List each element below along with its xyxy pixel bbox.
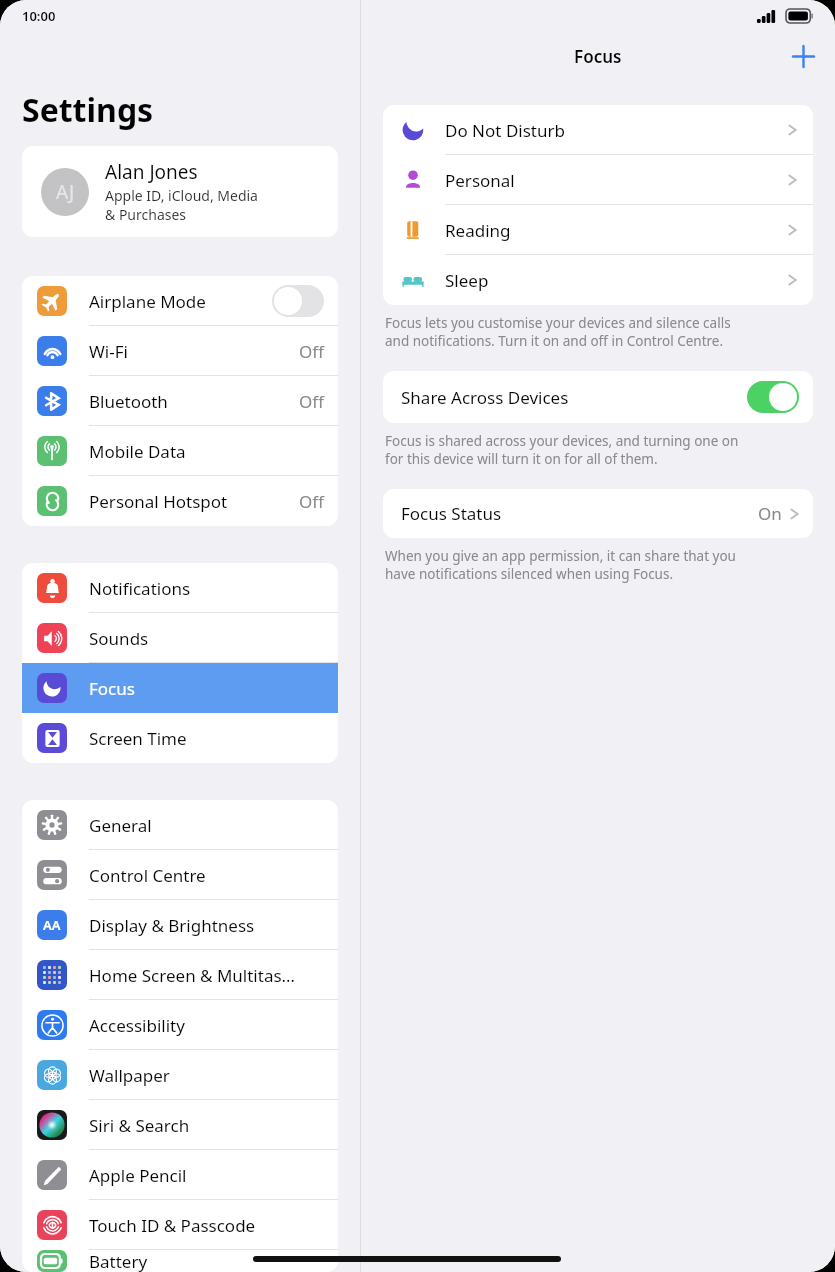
staticText: Reading: [445, 219, 511, 242]
button[interactable]: Mobile Data: [22, 426, 338, 476]
staticText: Notifications: [89, 577, 191, 600]
button[interactable]: Personal: [383, 155, 813, 205]
button[interactable]: Focus Status: [383, 489, 813, 538]
staticText: Display & Brightness: [89, 914, 255, 937]
staticText: Off: [299, 490, 324, 513]
staticText: Focus: [574, 45, 622, 68]
staticText: Touch ID & Passcode: [89, 1214, 256, 1237]
staticText: Off: [299, 390, 324, 413]
staticText: Apple Pencil: [89, 1164, 187, 1187]
staticText: Off: [299, 340, 324, 363]
staticText: Focus lets you customise your devices an…: [385, 314, 731, 350]
staticText: Focus: [89, 677, 135, 700]
button[interactable]: Reading: [383, 205, 813, 255]
staticText: Do Not Disturb: [445, 119, 565, 142]
staticText: Settings: [22, 88, 154, 132]
staticText: Personal Hotspot: [89, 490, 228, 513]
button[interactable]: Bluetooth: [22, 376, 338, 426]
staticText: Accessibility: [89, 1014, 185, 1037]
button[interactable]: Screen Time: [22, 713, 338, 763]
button[interactable]: Control Centre: [22, 850, 338, 900]
button[interactable]: Share Across Devices: [383, 371, 813, 423]
staticText: Home Screen & Multitas…: [89, 964, 296, 987]
staticText: Airplane Mode: [89, 290, 206, 313]
button[interactable]: Accessibility: [22, 1000, 338, 1050]
staticText: Sounds: [89, 627, 149, 650]
button[interactable]: Add Focus: [781, 34, 825, 78]
button[interactable]: Notifications: [22, 563, 338, 613]
staticText: Focus Status: [401, 502, 502, 525]
staticText: Wallpaper: [89, 1064, 170, 1087]
button[interactable]: Apple Pencil: [22, 1150, 338, 1200]
button[interactable]: AJ: [22, 146, 338, 237]
button[interactable]: Sounds: [22, 613, 338, 663]
button[interactable]: Home Screen & Multitas…: [22, 950, 338, 1000]
staticText: Apple ID, iCloud, Media & Purchases: [105, 186, 258, 224]
button[interactable]: Touch ID & Passcode: [22, 1200, 338, 1250]
button[interactable]: Wi-Fi: [22, 326, 338, 376]
button[interactable]: Wallpaper: [22, 1050, 338, 1100]
staticText: Focus is shared across your devices, and…: [385, 432, 739, 468]
staticText: Share Across Devices: [401, 386, 569, 409]
staticText: Alan Jones: [105, 159, 198, 185]
staticText: General: [89, 814, 152, 837]
button[interactable]: Do Not Disturb: [383, 105, 813, 155]
button[interactable]: General: [22, 800, 338, 850]
button[interactable]: Sleep: [383, 255, 813, 305]
staticText: Sleep: [445, 269, 489, 292]
staticText: Wi-Fi: [89, 340, 128, 363]
button[interactable]: Airplane Mode: [22, 276, 338, 326]
staticText: Bluetooth: [89, 390, 168, 413]
staticText: AA: [43, 916, 61, 934]
staticText: Personal: [445, 169, 515, 192]
staticText: Screen Time: [89, 727, 187, 750]
staticText: On: [758, 502, 782, 525]
button[interactable]: Battery: [22, 1250, 338, 1272]
button[interactable]: Toggle on: [747, 381, 799, 413]
button[interactable]: Toggle off: [272, 285, 324, 317]
button[interactable]: Personal Hotspot: [22, 476, 338, 526]
staticText: 10:00: [22, 7, 56, 25]
staticText: When you give an app permission, it can …: [385, 547, 736, 583]
staticText: Battery: [89, 1250, 148, 1272]
button[interactable]: AA: [22, 900, 338, 950]
button[interactable]: Siri & Search: [22, 1100, 338, 1150]
staticText: Control Centre: [89, 864, 206, 887]
button[interactable]: Focus: [22, 663, 338, 713]
staticText: Mobile Data: [89, 440, 186, 463]
staticText: AJ: [56, 179, 75, 205]
staticText: Siri & Search: [89, 1114, 190, 1137]
